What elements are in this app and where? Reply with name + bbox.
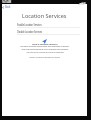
staticText: Location Services allows apps and websit…: [20, 44, 69, 47]
other: Location: [42, 39, 47, 44]
staticText: and use data indicating your approximate…: [21, 47, 69, 50]
staticText: ▂▄▆ ▮: [78, 1, 86, 4]
staticText: What is Location Services?: [32, 42, 58, 45]
staticText: 9:41 AM: [2, 0, 12, 4]
staticText: About Location Services & Privacy: [29, 55, 61, 58]
staticText: Back: [5, 5, 11, 9]
button[interactable]: Disable Location Services: [2, 28, 87, 35]
button[interactable]: About Location Services & Privacy: [2, 54, 87, 58]
staticText: Disable Location Services: [17, 30, 43, 34]
staticText: Enable Location Services: [17, 23, 42, 27]
staticText: Location Services: [22, 12, 67, 18]
button[interactable]: Enable Location Services: [2, 21, 87, 28]
button[interactable]: Back: [2, 5, 11, 9]
staticText: You can turn it off at any time in Setti…: [26, 50, 64, 53]
